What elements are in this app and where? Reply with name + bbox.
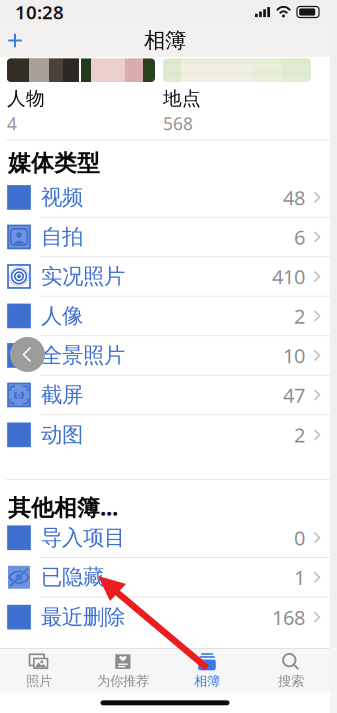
staticText: 410 xyxy=(272,263,305,290)
button[interactable]: 人物 xyxy=(7,58,155,135)
staticText: 0 xyxy=(294,524,305,551)
button[interactable]: 动图 xyxy=(0,415,333,455)
button[interactable]: 导入项目 xyxy=(0,518,333,558)
button[interactable]: 自拍 xyxy=(0,218,333,257)
staticText: 自拍 xyxy=(41,224,83,250)
staticText: 全景照片 xyxy=(41,342,125,368)
button[interactable]: 截屏 xyxy=(0,376,333,415)
staticText: 实况照片 xyxy=(41,263,125,289)
button[interactable]: 为你推荐 xyxy=(81,649,165,693)
button[interactable]: 人像 xyxy=(0,297,333,336)
staticText: 为你推荐 xyxy=(97,673,149,689)
staticText: 4 xyxy=(7,112,17,135)
staticText: 媒体类型 xyxy=(8,149,100,177)
staticText: 人物 xyxy=(7,87,45,110)
staticText: 10:28 xyxy=(15,0,64,24)
staticText: 其他相簿... xyxy=(8,492,118,522)
staticText: 568 xyxy=(163,112,193,135)
staticText: 6 xyxy=(294,224,305,250)
staticText: 导入项目 xyxy=(41,525,125,551)
button[interactable]: New album xyxy=(0,23,32,57)
staticText: 168 xyxy=(272,604,305,630)
staticText: 截屏 xyxy=(41,382,83,408)
button[interactable]: 实况照片 xyxy=(0,257,333,297)
staticText: 相簿 xyxy=(194,673,220,689)
staticText: 相簿 xyxy=(144,27,186,54)
staticText: 照片 xyxy=(26,673,52,689)
button[interactable]: 全景照片 xyxy=(0,336,333,376)
button[interactable]: 最近删除 xyxy=(0,597,333,637)
staticText: 47 xyxy=(283,382,305,408)
button[interactable]: 地点 xyxy=(163,58,311,135)
button[interactable]: 照片 xyxy=(0,649,81,693)
staticText: 10 xyxy=(283,342,305,369)
staticText: 1 xyxy=(294,564,305,591)
button[interactable]: 搜索 xyxy=(249,649,333,693)
button[interactable]: 相簿 xyxy=(165,649,249,693)
staticText: 已隐藏 xyxy=(41,564,104,590)
button[interactable]: 已隐藏 xyxy=(0,558,333,597)
staticText: 48 xyxy=(283,184,305,211)
staticText: 地点 xyxy=(163,87,201,110)
staticText: 视频 xyxy=(41,184,83,210)
staticText: 动图 xyxy=(41,422,83,448)
staticText: 人像 xyxy=(41,303,83,329)
staticText: 最近删除 xyxy=(41,604,125,630)
staticText: 搜索 xyxy=(278,673,304,689)
staticText: 2 xyxy=(294,303,305,329)
staticText: 2 xyxy=(294,422,305,448)
button[interactable]: 视频 xyxy=(0,178,333,218)
